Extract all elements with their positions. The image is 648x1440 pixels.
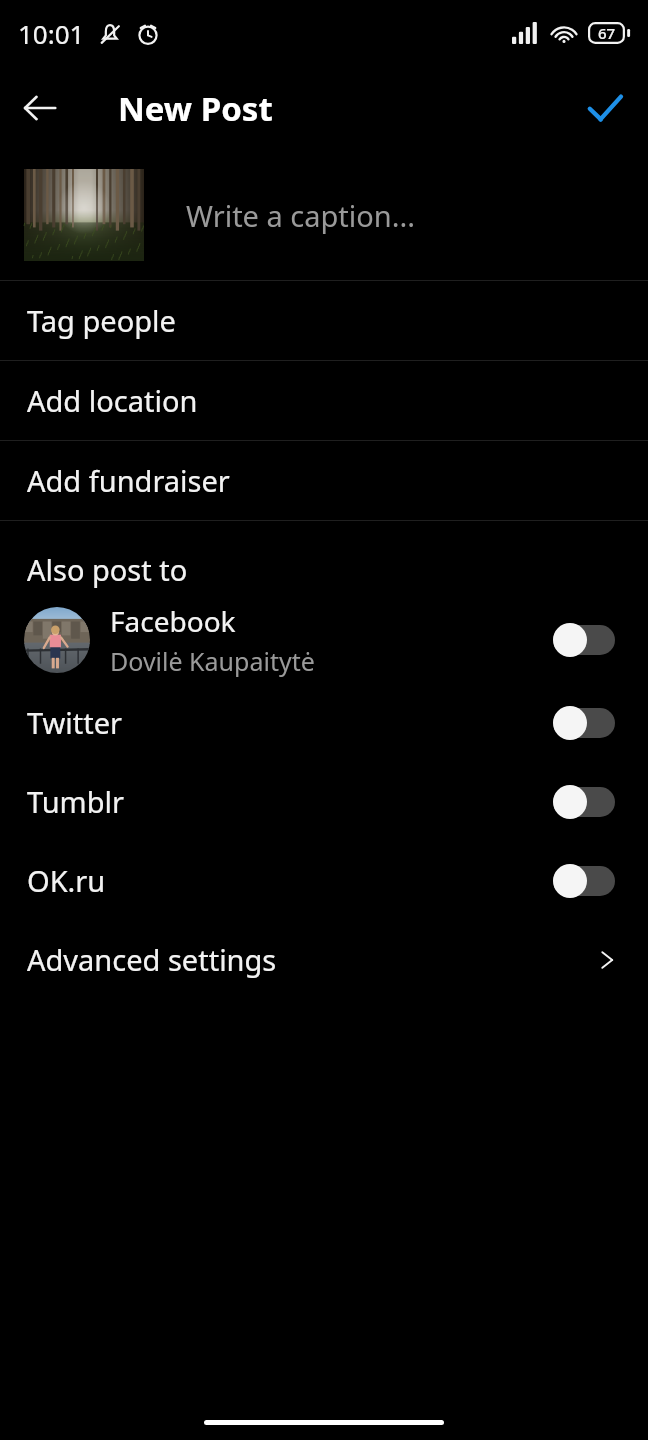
- button[interactable]: Add fundraiser: [0, 441, 648, 520]
- staticText: 67: [598, 23, 616, 43]
- button[interactable]: OK.ru: [0, 841, 648, 920]
- button[interactable]: Tag people: [0, 281, 648, 360]
- staticText: Add fundraiser: [27, 461, 230, 500]
- staticText: Add location: [27, 381, 198, 420]
- staticText: Dovilė Kaupaitytė: [110, 644, 315, 678]
- button[interactable]: Add location: [0, 361, 648, 440]
- button[interactable]: Facebook: [0, 597, 648, 683]
- button[interactable]: Twitter: [0, 683, 648, 762]
- button[interactable]: Back: [10, 78, 70, 138]
- staticText: Write a caption...: [186, 196, 416, 235]
- staticText: New Post: [118, 86, 273, 131]
- button[interactable]: Toggle, off: [553, 864, 615, 898]
- button[interactable]: Toggle, off: [553, 706, 615, 740]
- button[interactable]: Write a caption...: [0, 150, 648, 280]
- button[interactable]: Advanced settings: [0, 920, 648, 999]
- button[interactable]: Toggle, off: [553, 623, 615, 657]
- staticText: 10:01: [18, 16, 85, 51]
- button[interactable]: Tumblr: [0, 762, 648, 841]
- staticText: Tumblr: [27, 782, 125, 821]
- staticText: Twitter: [27, 703, 123, 742]
- button[interactable]: Share post: [574, 77, 636, 139]
- staticText: Advanced settings: [27, 940, 277, 979]
- staticText: Facebook: [110, 602, 236, 640]
- staticText: OK.ru: [27, 861, 106, 900]
- button[interactable]: Toggle, off: [553, 785, 615, 819]
- staticText: Tag people: [27, 301, 176, 340]
- staticText: Also post to: [27, 550, 188, 589]
